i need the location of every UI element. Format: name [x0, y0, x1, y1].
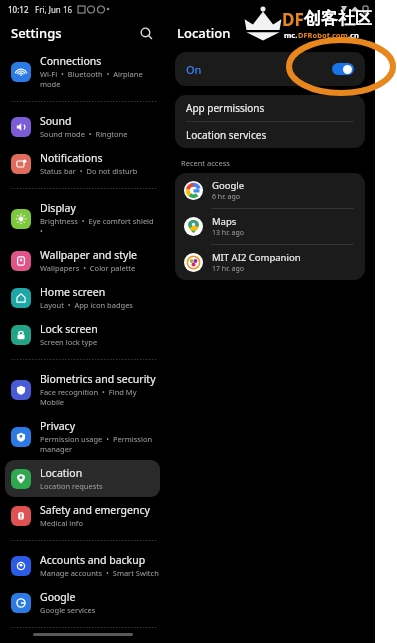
- staticText: mc.: [284, 30, 298, 40]
- staticText: .cn: [348, 30, 359, 40]
- staticText: Google services: [40, 605, 96, 615]
- staticText: On: [186, 62, 202, 77]
- staticText: Location: [40, 466, 83, 480]
- staticText: Status bar • Do not disturb: [40, 166, 138, 176]
- button[interactable]: On: [175, 52, 365, 86]
- staticText: Manage accounts • Smart Switch: [40, 568, 159, 578]
- staticText: Location services: [186, 128, 267, 142]
- staticText: Screen lock type: [40, 337, 98, 347]
- staticText: Home screen: [40, 285, 106, 299]
- button[interactable]: Google: [0, 584, 165, 621]
- button[interactable]: Advanced features: [0, 634, 165, 643]
- button[interactable]: Location: [5, 460, 160, 497]
- staticText: MIT AI2 Companion: [212, 251, 301, 264]
- button[interactable]: Lock screen: [0, 316, 165, 353]
- button[interactable]: Biometrics and security: [0, 366, 165, 413]
- staticText: Privacy: [40, 419, 76, 433]
- staticText: Google: [212, 179, 245, 192]
- button[interactable]: MIT AI2 Companion: [175, 245, 365, 280]
- button[interactable]: Accounts and backup: [0, 547, 165, 584]
- staticText: 创客社区: [304, 8, 372, 29]
- staticText: Accounts and backup: [40, 553, 146, 567]
- button[interactable]: Home screen: [0, 279, 165, 316]
- staticText: Maps: [212, 215, 237, 228]
- staticText: Notifications: [40, 151, 103, 165]
- staticText: Location requests: [40, 481, 103, 491]
- button[interactable]: Location services: [175, 122, 365, 148]
- staticText: Biometrics and security: [40, 372, 156, 386]
- staticText: Recent access: [181, 158, 230, 168]
- staticText: Lock screen: [40, 322, 98, 336]
- staticText: DF: [282, 8, 304, 31]
- button[interactable]: Privacy: [0, 413, 165, 460]
- staticText: Fri, Jun 16: [35, 4, 73, 15]
- staticText: Medical info: [40, 518, 83, 528]
- button[interactable]: Wallpaper and style: [0, 242, 165, 279]
- button[interactable]: Safety and emergency: [0, 497, 165, 534]
- button[interactable]: Notifications: [0, 145, 165, 182]
- staticText: 13 hr. ago: [212, 228, 245, 238]
- staticText: Connections: [40, 54, 102, 68]
- button[interactable]: Display: [0, 195, 165, 242]
- staticText: Permission usage • Permission manager: [40, 434, 159, 454]
- staticText: Display: [40, 201, 76, 215]
- staticText: Layout • App icon badges: [40, 300, 133, 310]
- button[interactable]: Connections: [0, 48, 165, 95]
- staticText: Sound mode • Ringtone: [40, 129, 128, 139]
- staticText: Settings: [11, 24, 62, 42]
- staticText: DFRobot.com: [298, 30, 348, 40]
- button[interactable]: Google: [175, 173, 365, 208]
- staticText: Safety and emergency: [40, 503, 150, 517]
- staticText: 10:12: [8, 4, 29, 15]
- staticText: 6 hr. ago: [212, 192, 241, 202]
- staticText: Wi-Fi • Bluetooth • Airplane mode: [40, 69, 159, 89]
- staticText: App permissions: [186, 101, 265, 115]
- staticText: Face recognition • Find My Mobile: [40, 387, 159, 407]
- staticText: Brightness • Eye comfort shield • Naviga…: [40, 216, 159, 236]
- button[interactable]: App permissions: [175, 95, 365, 121]
- staticText: Sound: [40, 114, 72, 128]
- staticText: Wallpapers • Color palette: [40, 263, 136, 273]
- staticText: Location: [177, 24, 231, 42]
- button[interactable]: Maps: [175, 209, 365, 244]
- button[interactable]: Search: [135, 22, 157, 44]
- staticText: Wallpaper and style: [40, 248, 138, 262]
- staticText: Google: [40, 590, 76, 604]
- staticText: 17 hr. ago: [212, 264, 245, 274]
- button[interactable]: Sound: [0, 108, 165, 145]
